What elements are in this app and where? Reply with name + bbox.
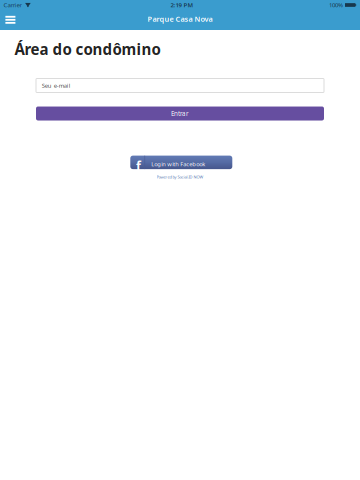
staticText: Entrar — [171, 109, 189, 118]
button[interactable]: Menu — [0, 12, 23, 30]
staticText: 100% — [329, 1, 343, 9]
button[interactable]: f — [130, 157, 232, 171]
staticText: Carrier — [4, 1, 22, 9]
staticText: Powered by Social-ID NOW — [156, 174, 203, 180]
staticText: Login with Facebook — [151, 160, 205, 168]
staticText: Seu e-mail — [42, 81, 71, 89]
staticText: 2:19 PM — [170, 1, 193, 9]
button[interactable]: Entrar — [36, 106, 324, 120]
staticText: f — [136, 157, 141, 174]
staticText: Parque Casa Nova — [147, 14, 212, 24]
staticText: Área do condômino — [14, 39, 160, 59]
